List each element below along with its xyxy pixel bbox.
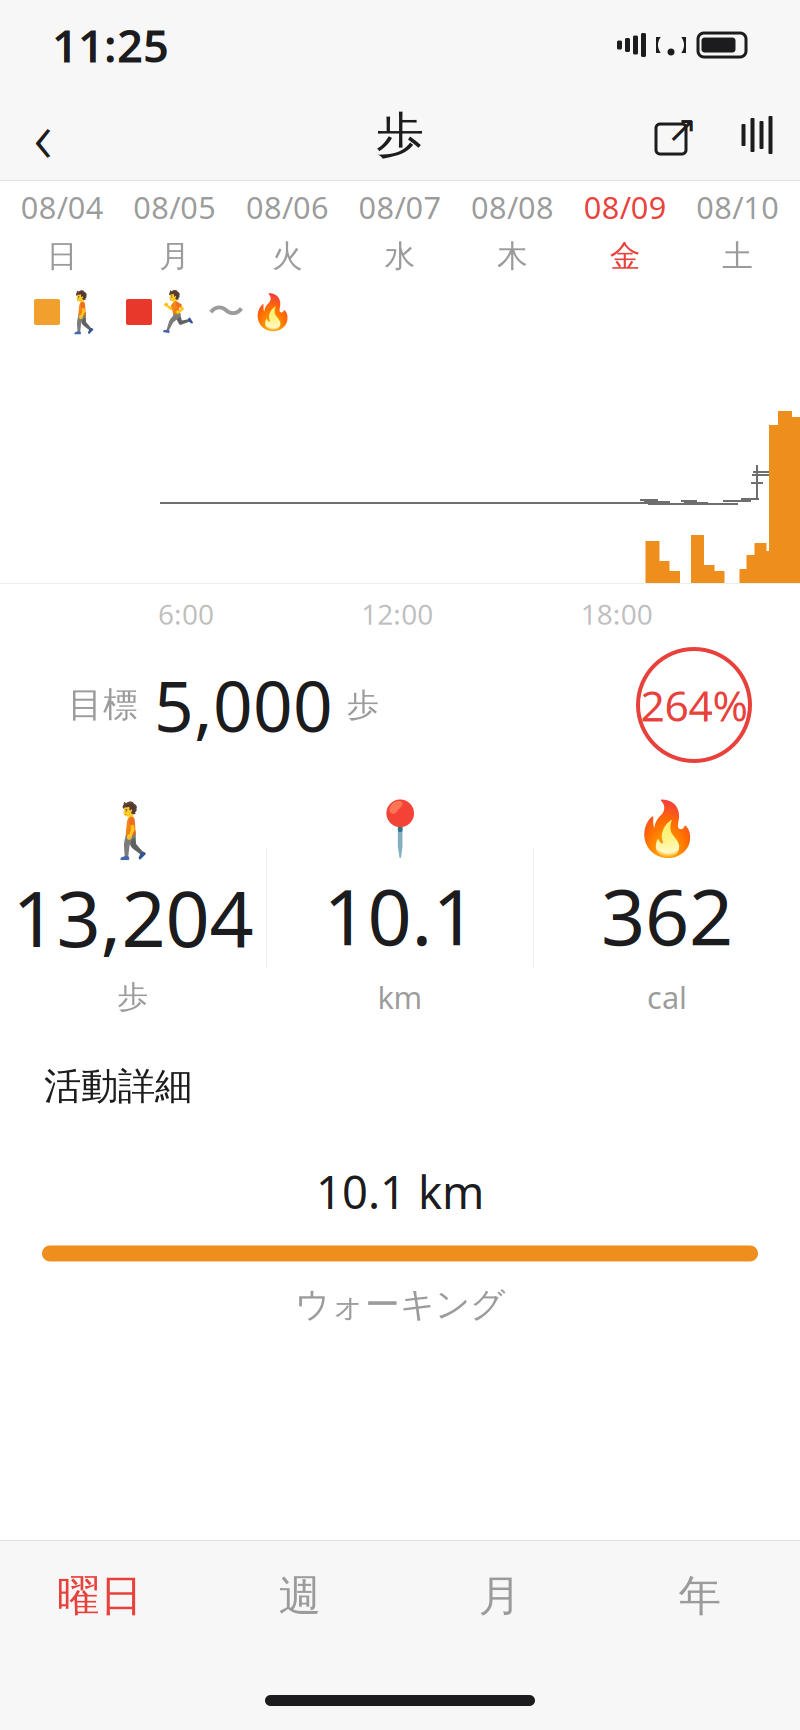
staticText: 土 (722, 237, 753, 275)
staticText: 🚶 (100, 800, 166, 861)
staticText: 12:00 (361, 595, 433, 633)
staticText: 年 (678, 1570, 721, 1622)
staticText: 13,204 (12, 865, 253, 968)
button[interactable]: 08/06 (231, 181, 344, 281)
staticText: 🔥 (634, 798, 700, 859)
staticText: cal (647, 977, 687, 1017)
button[interactable]: 08/05 (119, 181, 231, 281)
staticText: 10.1 km (316, 1161, 484, 1221)
staticText: 歩 (347, 685, 379, 725)
staticText: 歩 (376, 105, 424, 164)
staticText: 〜 (207, 289, 244, 335)
button[interactable]: 08/04 (6, 181, 119, 281)
button[interactable]: 月 (400, 1541, 600, 1651)
button[interactable]: 08/07 (344, 181, 456, 281)
staticText: 08/09 (584, 187, 667, 227)
staticText: 08/07 (358, 187, 441, 227)
button[interactable]: 08/10 (681, 181, 794, 281)
staticText: 目標 (68, 684, 138, 726)
staticText: 5,000 (154, 659, 333, 751)
staticText: ‹ (33, 87, 52, 183)
staticText: 18:00 (581, 595, 653, 633)
button[interactable]: 08/09 (569, 181, 681, 281)
staticText: km (377, 977, 422, 1017)
staticText: 日 (47, 237, 78, 275)
staticText: 曜日 (57, 1570, 143, 1622)
staticText: 🏃 (151, 289, 201, 335)
button[interactable]: 週 (200, 1541, 400, 1651)
button[interactable]: 年 (600, 1541, 800, 1651)
staticText: 木 (497, 237, 528, 275)
staticText: 🔥 (250, 292, 293, 332)
staticText: 火 (272, 237, 303, 275)
button[interactable]: Share (634, 92, 714, 178)
staticText: 月 (159, 237, 190, 275)
staticText: ↗ (666, 108, 697, 150)
staticText: 📍 (367, 798, 433, 859)
staticText: 活動詳細 (44, 1063, 192, 1109)
button[interactable]: 曜日 (0, 1541, 200, 1651)
staticText: 歩 (117, 978, 148, 1016)
staticText: 362 (601, 864, 733, 967)
staticText: 金 (610, 237, 641, 275)
staticText: 08/06 (246, 187, 329, 227)
staticText: 08/04 (21, 187, 104, 227)
staticText: 週 (278, 1570, 321, 1622)
button[interactable]: 08/08 (456, 181, 569, 281)
staticText: 08/08 (471, 187, 554, 227)
staticText: 6:00 (158, 595, 214, 633)
staticText: 水 (384, 237, 415, 275)
button[interactable]: Statistics (714, 92, 800, 178)
staticText: ウォーキング (295, 1283, 505, 1326)
staticText: 10.1 (323, 864, 476, 967)
staticText: 月 (478, 1570, 521, 1622)
staticText: 08/05 (133, 187, 216, 227)
staticText: 🚶 (59, 289, 109, 335)
button[interactable]: Back (0, 92, 86, 178)
staticText: 264% (640, 677, 747, 733)
staticText: 08/10 (696, 187, 779, 227)
staticText: 11:25 (52, 15, 169, 75)
